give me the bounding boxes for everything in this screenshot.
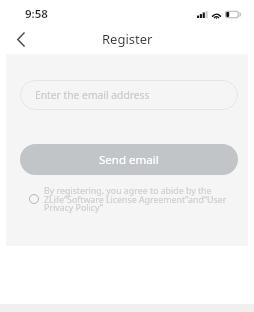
staticText: Register — [102, 30, 153, 48]
button[interactable]: Enter the email address — [20, 80, 238, 110]
button[interactable]: By registering, you agree to abide by th… — [29, 185, 234, 213]
staticText: Send email — [99, 152, 159, 168]
button[interactable]: Send email — [20, 144, 238, 175]
staticText: By registering, you agree to abide by th… — [44, 185, 227, 213]
button[interactable]: Back — [7, 26, 33, 52]
staticText: 9:58 — [25, 6, 48, 22]
staticText: Enter the email address — [35, 88, 150, 102]
